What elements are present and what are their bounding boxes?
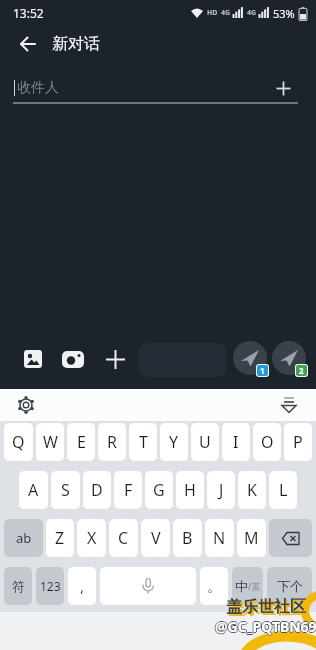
staticText: E xyxy=(77,431,86,453)
staticText: ab xyxy=(16,529,32,547)
staticText: C xyxy=(118,527,129,549)
button[interactable]: E xyxy=(67,423,95,461)
staticText: O xyxy=(261,431,274,453)
button[interactable]: X xyxy=(77,519,106,557)
button[interactable]: B xyxy=(173,519,202,557)
staticText: @GC_PQTBN69 xyxy=(214,617,316,636)
button[interactable] xyxy=(18,344,48,374)
button[interactable]: Z xyxy=(46,519,74,557)
button[interactable]: L xyxy=(269,471,297,509)
button[interactable]: F xyxy=(114,471,142,509)
staticText: @GC_PQTBN69 xyxy=(215,617,316,636)
staticText: 下个 xyxy=(277,578,303,594)
staticText: U xyxy=(199,431,211,453)
staticText: P xyxy=(293,431,303,453)
staticText: 盖乐世社区 xyxy=(226,597,306,617)
staticText: @GC_PQTBN69 xyxy=(216,617,316,636)
staticText: 盖乐世社区 xyxy=(228,599,308,619)
button[interactable]: Y xyxy=(160,423,188,461)
staticText: H xyxy=(184,479,196,501)
button[interactable]: G xyxy=(145,471,173,509)
button[interactable] xyxy=(14,30,42,58)
staticText: 收件人 xyxy=(17,79,59,97)
button[interactable] xyxy=(271,76,295,100)
staticText: T xyxy=(139,431,148,453)
staticText: G xyxy=(153,479,165,501)
button[interactable]: 下个 xyxy=(267,567,312,605)
button[interactable]: , xyxy=(68,567,96,605)
staticText: Q xyxy=(12,431,25,453)
button[interactable] xyxy=(16,395,36,415)
staticText: 符 xyxy=(12,578,25,594)
staticText: M xyxy=(244,527,259,549)
staticText: @GC_PQTBN69 xyxy=(215,618,316,637)
staticText: L xyxy=(279,479,288,501)
staticText: 中 xyxy=(235,578,248,594)
button[interactable]: S xyxy=(51,471,80,509)
button[interactable] xyxy=(272,341,306,375)
button[interactable] xyxy=(233,341,267,375)
staticText: V xyxy=(151,527,161,549)
staticText: I xyxy=(233,431,239,453)
button[interactable]: V xyxy=(141,519,170,557)
staticText: 新对话 xyxy=(52,34,100,54)
button[interactable] xyxy=(100,344,130,374)
button[interactable]: U xyxy=(191,423,219,461)
staticText: B xyxy=(182,527,193,549)
staticText: J xyxy=(219,479,224,501)
button[interactable]: W xyxy=(36,423,64,461)
staticText: Y xyxy=(169,431,179,453)
button[interactable]: M xyxy=(237,519,266,557)
staticText: /英 xyxy=(248,580,261,592)
staticText: A xyxy=(28,479,39,501)
button[interactable]: D xyxy=(83,471,111,509)
staticText: 4G xyxy=(221,8,231,18)
button[interactable]: N xyxy=(205,519,234,557)
staticText: X xyxy=(87,527,97,549)
button[interactable]: Q xyxy=(4,423,33,461)
staticText: 2 xyxy=(299,365,304,376)
staticText: , xyxy=(80,576,85,596)
staticText: D xyxy=(91,479,103,501)
button[interactable]: K xyxy=(238,471,266,509)
button[interactable]: R xyxy=(98,423,126,461)
button[interactable] xyxy=(100,567,196,605)
staticText: @GC_PQTBN69 xyxy=(215,616,316,635)
button[interactable]: O xyxy=(253,423,281,461)
button[interactable]: 符 xyxy=(4,567,32,605)
staticText: K xyxy=(247,479,257,501)
staticText: R xyxy=(107,431,117,453)
staticText: S xyxy=(61,479,70,501)
button[interactable]: A xyxy=(19,471,48,509)
staticText: 53% xyxy=(273,6,295,21)
staticText: F xyxy=(124,479,133,501)
button[interactable] xyxy=(278,394,300,416)
button[interactable]: 中 xyxy=(232,567,263,605)
button[interactable]: H xyxy=(176,471,204,509)
button[interactable]: 123 xyxy=(36,567,64,605)
staticText: 1 xyxy=(260,365,265,376)
button[interactable]: I xyxy=(222,423,250,461)
button[interactable]: J xyxy=(207,471,235,509)
button[interactable]: ab xyxy=(4,519,43,557)
staticText: Z xyxy=(55,527,65,549)
staticText: 13:52 xyxy=(13,5,44,21)
staticText: HD xyxy=(207,8,218,18)
staticText: 123 xyxy=(40,578,61,594)
staticText: 。 xyxy=(207,577,222,596)
button[interactable]: P xyxy=(284,423,312,461)
button[interactable] xyxy=(269,519,312,557)
staticText: 4G xyxy=(247,8,257,18)
button[interactable]: T xyxy=(129,423,157,461)
button[interactable]: 。 xyxy=(200,567,228,605)
button[interactable]: C xyxy=(109,519,138,557)
button[interactable] xyxy=(58,344,88,374)
staticText: N xyxy=(213,527,226,549)
staticText: W xyxy=(43,431,58,453)
